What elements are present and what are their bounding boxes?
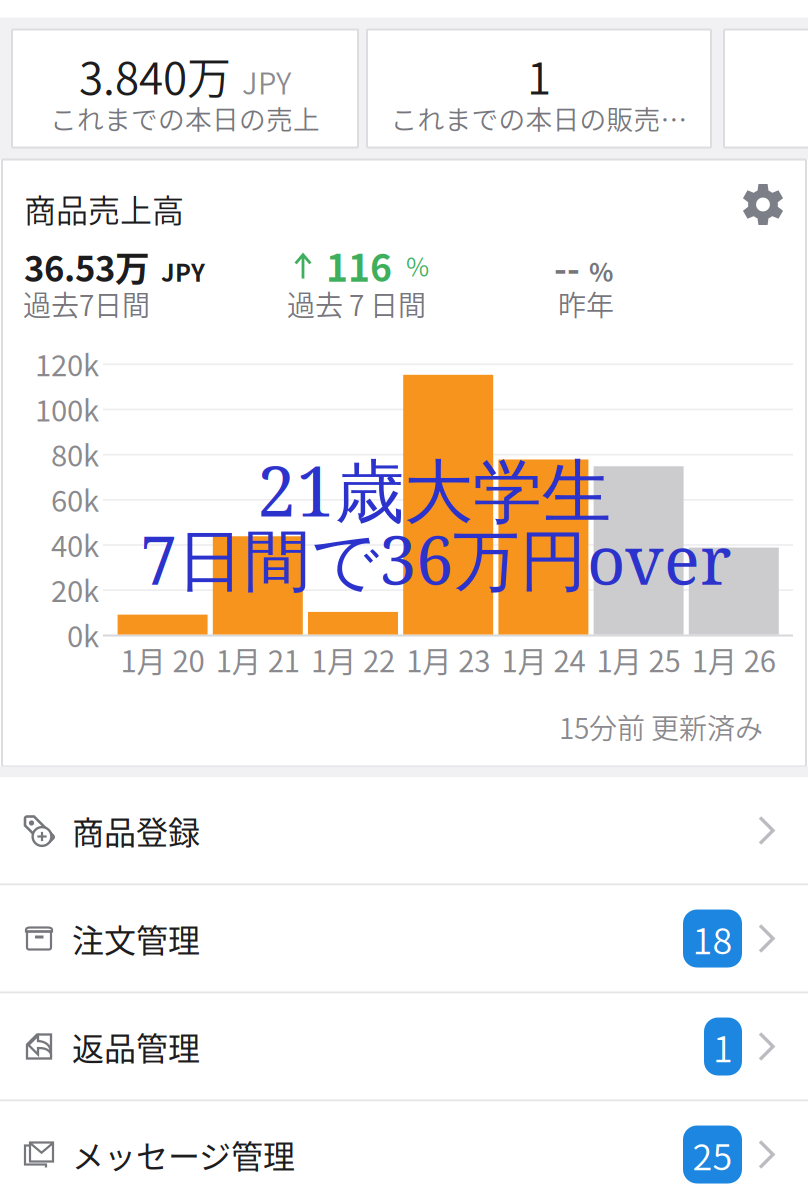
staticText: 1月 25 [597, 638, 681, 681]
staticText: 120k [35, 342, 99, 385]
staticText: 昨年 [558, 283, 614, 324]
staticText: 返品管理 [72, 1023, 200, 1070]
button[interactable]: 商品登録 [0, 777, 808, 883]
staticText: 20k [51, 568, 99, 611]
staticText: 1月 21 [216, 638, 300, 681]
staticText: これまでの本日の売上 [50, 98, 320, 137]
staticText: % [406, 247, 429, 284]
staticText: 80k [51, 433, 99, 475]
button[interactable]: 返品管理 [0, 993, 808, 1099]
staticText: 1月 20 [121, 638, 205, 681]
staticText: 7日間で36万円over [140, 513, 731, 604]
staticText: 0k [67, 613, 99, 656]
staticText: JPY [161, 254, 205, 289]
staticText: 1月 22 [311, 638, 395, 681]
staticText: 商品登録 [72, 807, 200, 854]
staticText: 60k [51, 478, 99, 520]
staticText: 116 [326, 238, 392, 293]
staticText: -- [554, 241, 580, 292]
button[interactable]: 注文管理 [0, 885, 808, 991]
staticText: 15分前 更新済み [559, 706, 763, 747]
staticText: 1月 26 [692, 638, 776, 681]
staticText: JPY [242, 60, 291, 103]
staticText: 18 [692, 912, 732, 964]
button[interactable]: メッセージ管理 [0, 1101, 808, 1200]
staticText: 過去 7 日間 [287, 283, 426, 324]
staticText: 1 [713, 1020, 733, 1072]
button[interactable]: Settings [742, 183, 784, 225]
staticText: 3.840万 [79, 43, 231, 107]
staticText: 36.53万 [24, 241, 150, 292]
staticText: 21歳大学生 [257, 442, 611, 537]
staticText: 100k [35, 387, 99, 430]
staticText: 注文管理 [72, 915, 200, 962]
staticText: これまでの本日の販売… [390, 98, 687, 137]
staticText: メッセージ管理 [72, 1131, 295, 1178]
staticText: 1月 24 [501, 638, 585, 681]
staticText: 40k [51, 523, 99, 565]
staticText: 25 [692, 1128, 732, 1180]
staticText: 商品売上高 [24, 185, 184, 232]
staticText: 1月 23 [406, 638, 490, 681]
staticText: % [589, 252, 613, 289]
staticText: 過去7日間 [23, 283, 150, 324]
staticText: 1 [527, 43, 551, 107]
